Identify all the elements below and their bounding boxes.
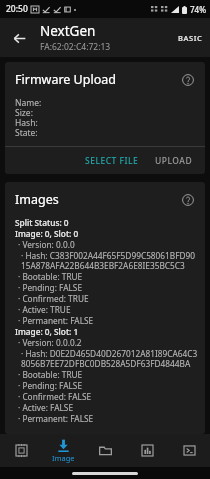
staticText: BASIC	[178, 33, 203, 43]
staticText: Split Status: 0	[15, 217, 69, 228]
staticText: Image: 0, Slot: 0	[15, 228, 79, 239]
staticText: · Version: 0.0.0	[18, 239, 75, 250]
staticText: · Hash: D0E2D465D40D267012A81I89CA64C380…	[21, 348, 199, 369]
staticText: SELECT FILE	[85, 155, 139, 167]
staticText: 74%	[190, 4, 206, 15]
button[interactable]: Shell	[168, 434, 210, 467]
button[interactable]: Back	[4, 23, 34, 53]
staticText: · Confirmed: FALSE	[18, 391, 92, 402]
button[interactable]: Device	[0, 434, 42, 467]
button[interactable]: BASIC	[171, 27, 210, 49]
button[interactable]: Files	[84, 434, 126, 467]
staticText: · Permanent: FALSE	[18, 413, 94, 424]
staticText: UPLOAD	[155, 155, 193, 167]
staticText: · Pending: FALSE	[18, 380, 83, 391]
staticText: · Confirmed: TRUE	[18, 293, 89, 304]
staticText: State:	[15, 127, 38, 137]
staticText: Images	[15, 191, 179, 208]
staticText: NextGen	[40, 22, 96, 40]
staticText: Image: 0, Slot: 1	[15, 326, 79, 337]
button[interactable]: Help	[179, 191, 197, 209]
staticText: · Bootable: TRUE	[18, 369, 83, 380]
staticText: · Active: TRUE	[18, 304, 71, 315]
staticText: Hash:	[15, 117, 38, 127]
staticText: Image	[52, 453, 75, 463]
staticText: Firmware Upload	[15, 71, 179, 88]
button[interactable]: Image	[42, 434, 84, 467]
staticText: 20:50	[6, 3, 28, 15]
staticText: · Bootable: TRUE	[18, 271, 83, 282]
staticText: · Pending: FALSE	[18, 282, 83, 293]
staticText: · Hash: C383F002A44F65F5D99C58061BFD9015…	[21, 250, 199, 271]
button[interactable]: Help	[179, 71, 197, 89]
staticText: · Version: 0.0.0.2	[18, 337, 82, 348]
staticText: Size:	[15, 107, 33, 117]
staticText: · Permanent: FALSE	[18, 315, 94, 326]
button[interactable]: UPLOAD	[149, 150, 199, 172]
button[interactable]: SELECT FILE	[79, 150, 145, 172]
staticText: FA:62:02:C4:72:13	[40, 41, 111, 53]
button[interactable]: Stats	[126, 434, 168, 467]
staticText: · Active: FALSE	[18, 402, 74, 413]
staticText: Name:	[15, 97, 42, 107]
